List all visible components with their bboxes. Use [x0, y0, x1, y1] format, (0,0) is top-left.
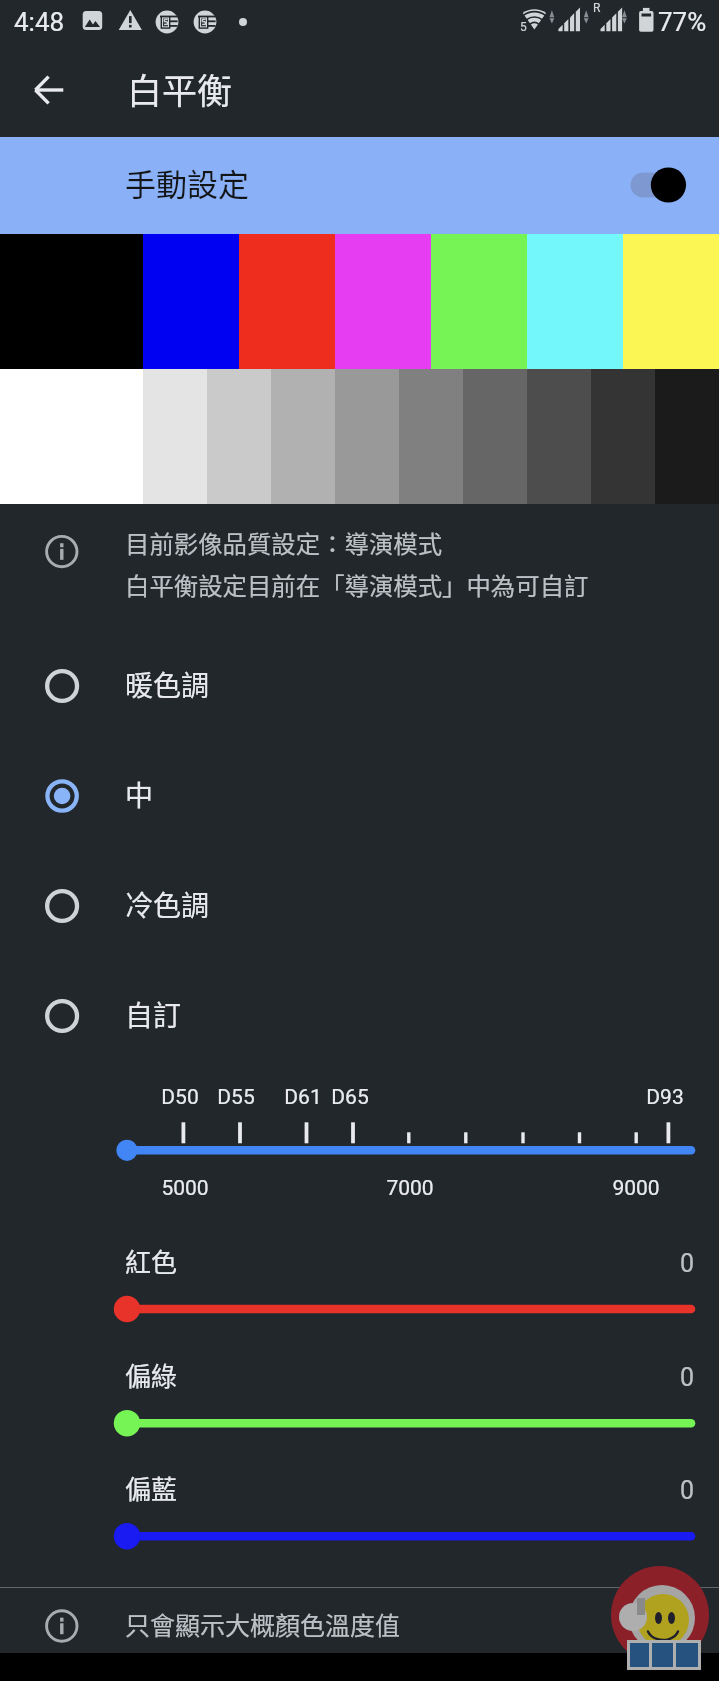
button[interactable]: Back [20, 61, 77, 118]
staticText: 0 [680, 1363, 695, 1392]
staticText: 紅色 [125, 1242, 178, 1280]
staticText: 目前影像品質設定：導演模式 [125, 525, 443, 560]
staticText: D55 [217, 1085, 255, 1110]
staticText: R [593, 1, 601, 15]
staticText: 偏藍 [125, 1469, 178, 1507]
staticText: 自訂 [125, 994, 182, 1035]
staticText: D93 [646, 1085, 684, 1110]
staticText: 白平衡設定目前在「導演模式」中為可自訂 [125, 567, 589, 602]
button[interactable]: 偏綠 [0, 1356, 719, 1452]
staticText: 手動設定 [125, 160, 249, 205]
staticText: 5000 [161, 1176, 209, 1201]
button[interactable]: 中 [0, 741, 719, 851]
button[interactable]: 冷色調 [0, 851, 719, 961]
staticText: D65 [331, 1085, 369, 1110]
staticText: 中 [125, 774, 154, 815]
staticText: 偏綠 [125, 1356, 178, 1394]
button[interactable]: 紅色 [0, 1242, 719, 1338]
staticText: 0 [680, 1476, 695, 1505]
staticText: 77% [658, 7, 707, 37]
button[interactable]: 偏藍 [0, 1469, 719, 1565]
button[interactable]: 自訂 [0, 961, 719, 1071]
staticText: 0 [680, 1249, 695, 1278]
staticText: 暖色調 [125, 664, 210, 705]
staticText: 冷色調 [125, 884, 210, 925]
staticText: 白平衡 [127, 63, 233, 114]
staticText: D61 [284, 1085, 322, 1110]
staticText: 只會顯示大概顏色溫度值 [125, 1606, 401, 1642]
staticText: D50 [161, 1085, 199, 1110]
staticText: 9000 [612, 1176, 660, 1201]
staticText: 7000 [386, 1176, 434, 1201]
staticText: 5 [520, 20, 527, 34]
button[interactable]: 暖色調 [0, 631, 719, 741]
button[interactable]: 手動設定 [0, 137, 719, 234]
staticText: 4:48 [14, 7, 65, 37]
